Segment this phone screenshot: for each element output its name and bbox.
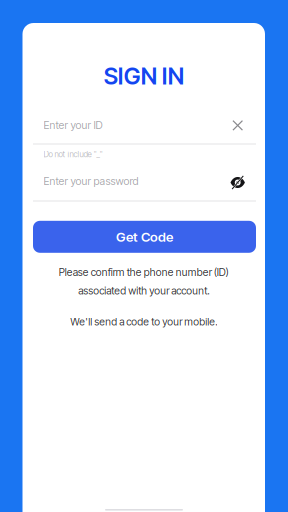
staticText: Enter your password: [43, 174, 138, 187]
staticText: associated with your account.: [78, 284, 209, 297]
button[interactable]: Show password: [225, 169, 251, 195]
staticText: Get Code: [116, 229, 173, 245]
button[interactable]: Enter your ID: [43, 112, 218, 138]
staticText: Enter your ID: [43, 118, 102, 131]
button[interactable]: Clear ID: [225, 112, 251, 138]
staticText: Please confirm the phone number (ID): [59, 266, 229, 279]
button[interactable]: Get Code: [33, 221, 256, 253]
staticText: We'll send a code to your mobile.: [70, 315, 217, 328]
staticText: Do not include "_": [43, 149, 102, 159]
button[interactable]: Enter your password: [43, 168, 218, 194]
staticText: SIGN IN: [104, 62, 184, 90]
